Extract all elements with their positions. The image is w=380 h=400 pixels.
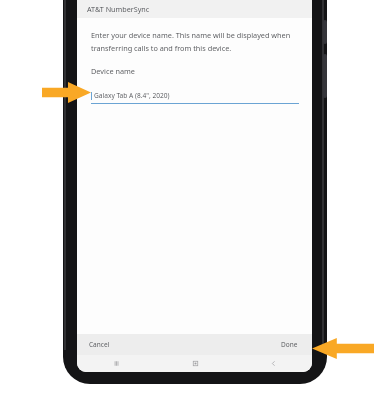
- staticText: transferring calls to and from this devi…: [91, 43, 232, 53]
- staticText: Galaxy Tab A (8.4", 2020): [94, 91, 170, 100]
- staticText: Device name: [91, 66, 135, 76]
- button[interactable]: Recents: [77, 355, 156, 372]
- button[interactable]: Back: [234, 355, 312, 372]
- staticText: Cancel: [89, 340, 110, 349]
- button[interactable]: Cancel: [83, 337, 116, 352]
- button[interactable]: Home: [156, 355, 234, 372]
- staticText: AT&T NumberSync: [87, 4, 150, 14]
- staticText: Done: [281, 340, 298, 349]
- button[interactable]: Done: [275, 337, 304, 352]
- button[interactable]: Galaxy Tab A (8.4", 2020): [91, 91, 299, 104]
- staticText: Enter your device name. This name will b…: [91, 30, 291, 40]
